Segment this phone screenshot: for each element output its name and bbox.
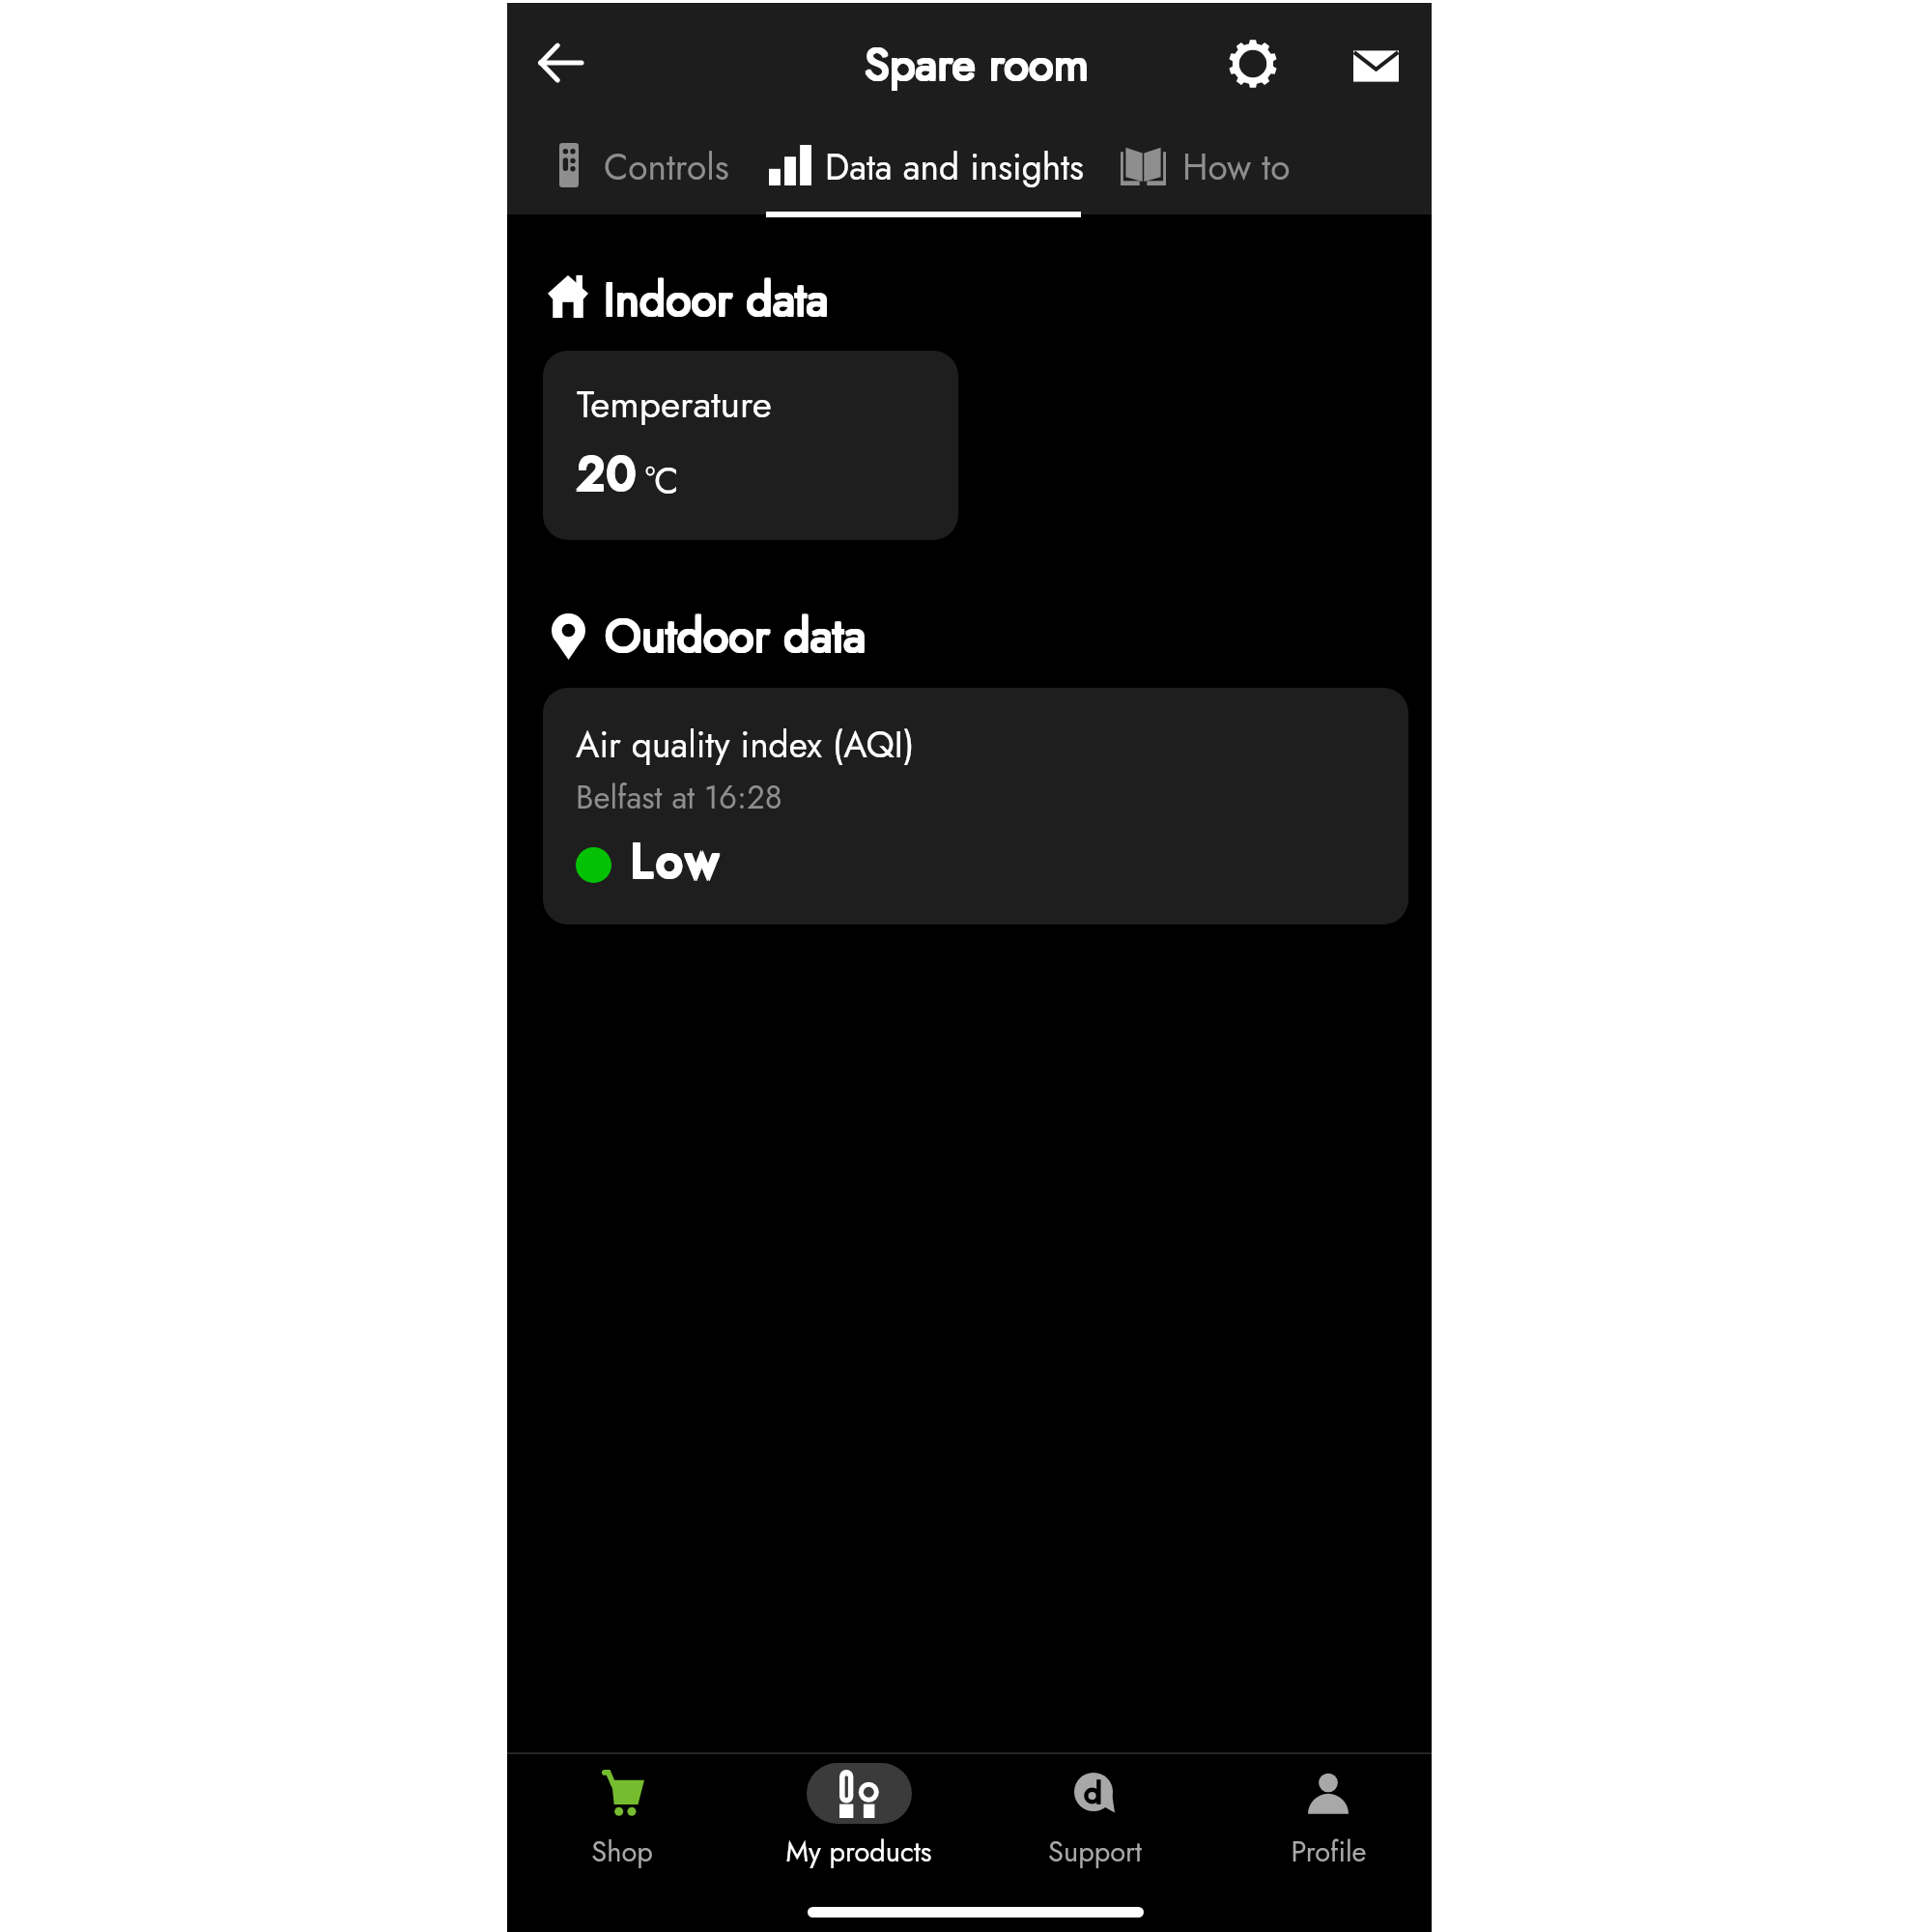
button[interactable]: Air quality index (AQI) — [543, 688, 1408, 924]
staticText: Outdoor data — [604, 604, 866, 666]
staticText: 20 — [577, 440, 638, 509]
button[interactable]: Controls — [546, 124, 778, 214]
button[interactable]: Messages — [1332, 22, 1419, 109]
button[interactable]: Indoor data — [542, 266, 870, 327]
staticText: Air quality index (AQI) — [576, 719, 915, 770]
staticText: 20 — [579, 440, 639, 509]
staticText: Low — [632, 826, 724, 895]
staticText: 20 — [579, 439, 639, 507]
staticText: Indoor data — [603, 266, 828, 327]
staticText: Shop — [591, 1832, 653, 1872]
staticText: Low — [630, 826, 722, 895]
staticText: Low — [632, 828, 724, 896]
staticText: Indoor data — [605, 268, 830, 329]
button[interactable]: Shop — [506, 1754, 738, 1889]
staticText: Indoor data — [605, 266, 830, 327]
button[interactable]: Profile — [1212, 1754, 1444, 1889]
staticText: Spare room — [866, 31, 1091, 97]
button[interactable]: Support — [979, 1754, 1210, 1889]
staticText: Temperature — [577, 377, 772, 431]
button[interactable]: Settings — [1209, 20, 1296, 107]
button[interactable]: Data and insights — [760, 124, 1104, 214]
staticText: Profile — [1291, 1832, 1367, 1872]
staticText: Spare room — [864, 33, 1089, 99]
staticText: Outdoor data — [604, 602, 866, 664]
staticText: Outdoor data — [606, 602, 867, 664]
staticText: Spare room — [864, 31, 1089, 97]
staticText: How to — [1182, 141, 1291, 192]
button[interactable]: How to — [1108, 124, 1316, 214]
button[interactable]: Back — [516, 18, 604, 106]
staticText: Low — [630, 828, 722, 896]
staticText: Belfast at 16:28 — [576, 775, 782, 821]
button[interactable]: My products — [743, 1754, 975, 1889]
staticText: °C — [645, 455, 679, 506]
staticText: Data and insights — [825, 141, 1085, 192]
staticText: My products — [785, 1832, 932, 1872]
staticText: Outdoor data — [606, 604, 867, 666]
staticText: Controls — [604, 141, 729, 192]
staticText: Indoor data — [603, 268, 828, 329]
staticText: Spare room — [866, 33, 1091, 99]
staticText: 20 — [577, 439, 638, 507]
button[interactable]: Temperature — [543, 351, 958, 540]
staticText: Support — [1048, 1832, 1142, 1872]
button[interactable]: Outdoor data — [542, 606, 890, 668]
